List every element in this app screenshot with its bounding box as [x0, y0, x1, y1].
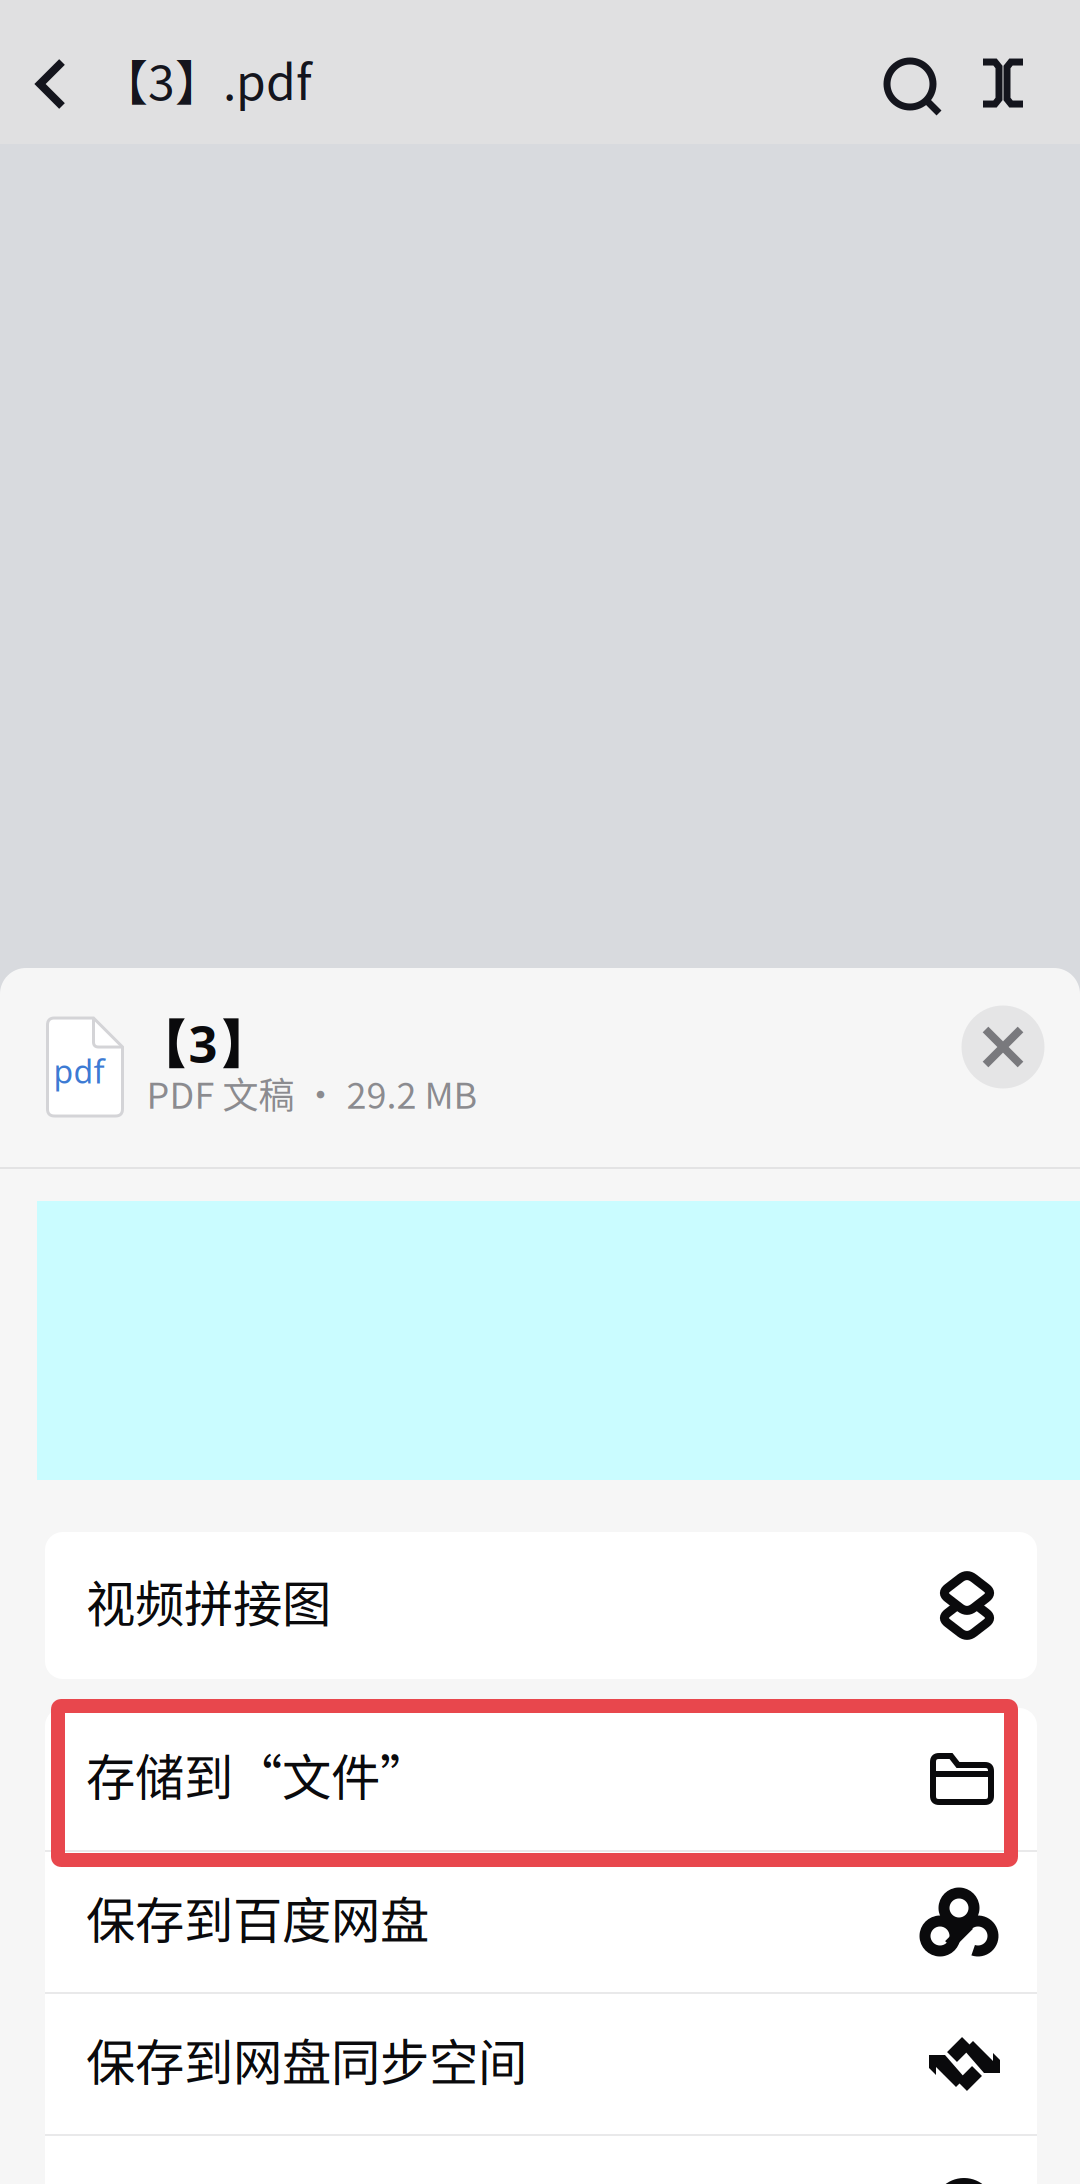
button[interactable]: 保存到百度网盘 [45, 1852, 1037, 1992]
staticText: 保存到网盘同步空间 [86, 2023, 527, 2095]
staticText: 存储到“文件” [86, 1738, 429, 1810]
staticText: 【3】.pdf [100, 44, 312, 114]
button[interactable]: 视频拼接图 [45, 1532, 1037, 1679]
staticText: 保存到百度网盘 [86, 1881, 429, 1953]
staticText: PDF 文稿 · 29.2 MB [146, 1067, 477, 1119]
staticText: 视频拼接图 [86, 1565, 331, 1636]
button[interactable]: 保存到网盘同步空间 [45, 1994, 1037, 2134]
button[interactable]: Reading layout [963, 11, 1043, 155]
button[interactable]: Close [961, 1005, 1044, 1088]
button[interactable]: Search [873, 15, 953, 159]
button[interactable]: Back [14, 12, 88, 156]
button[interactable]: 存储到“文件” [45, 1708, 1037, 1850]
staticText: pdf [53, 1050, 104, 1092]
staticText: 【3】 [137, 1008, 268, 1078]
